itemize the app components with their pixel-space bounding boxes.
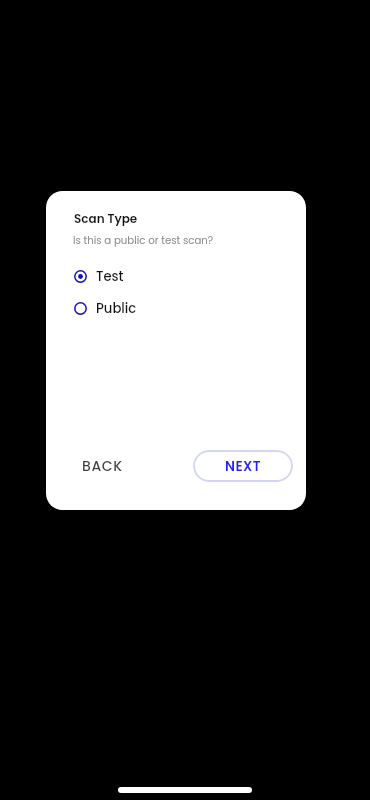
staticText: Scan Type: [74, 210, 138, 227]
staticText: Test: [96, 267, 124, 285]
button[interactable]: BACK: [72, 451, 133, 481]
staticText: Is this a public or test scan?: [73, 233, 214, 247]
other: Home: [118, 787, 252, 793]
staticText: Public: [96, 299, 137, 317]
button[interactable]: Public: [46, 292, 306, 324]
staticText: NEXT: [225, 457, 261, 476]
button[interactable]: NEXT: [193, 450, 293, 482]
button[interactable]: Test: [46, 260, 306, 292]
staticText: BACK: [82, 456, 123, 476]
